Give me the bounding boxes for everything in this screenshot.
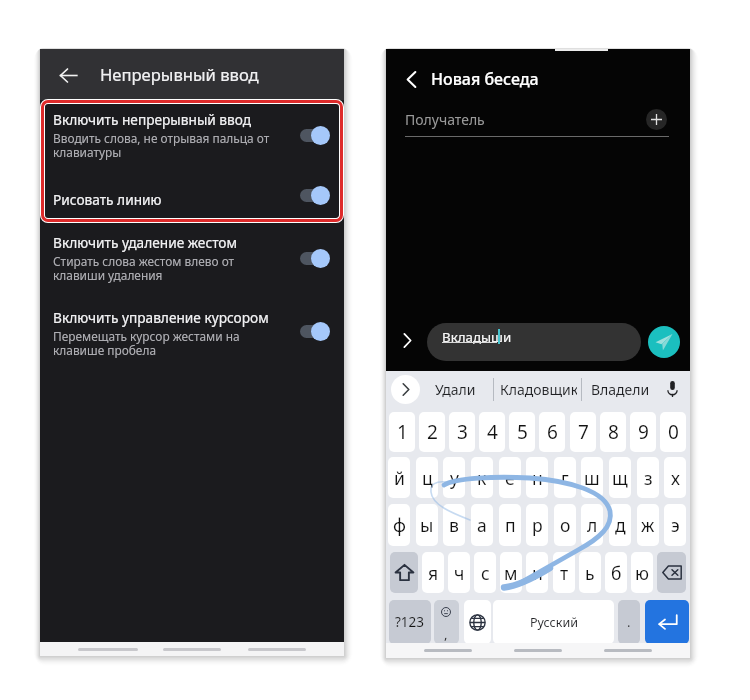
button[interactable]: а <box>471 504 493 546</box>
button[interactable]: Toggle <box>298 321 332 341</box>
staticText: Русский <box>530 614 578 631</box>
staticText: Получатель <box>405 110 485 129</box>
staticText: . <box>627 613 631 631</box>
button[interactable]: Back <box>46 53 90 97</box>
button[interactable]: ы <box>416 504 438 546</box>
staticText: с <box>481 561 490 585</box>
button[interactable]: п <box>499 504 521 546</box>
staticText: е <box>505 466 515 490</box>
button[interactable]: ь <box>579 552 601 593</box>
button[interactable]: 4 <box>479 412 505 452</box>
button[interactable]: More suggestions <box>391 375 420 404</box>
staticText: й <box>394 466 405 490</box>
staticText: Вводить слова, не отрывая пальца от клав… <box>53 130 270 161</box>
button[interactable]: ф <box>388 504 410 546</box>
button[interactable]: е <box>499 457 521 498</box>
button[interactable]: Включить управление курсором <box>40 308 344 368</box>
staticText: ч <box>454 561 465 585</box>
staticText: ы <box>420 513 434 537</box>
button[interactable]: Русский <box>493 600 614 644</box>
button[interactable]: Shift <box>390 552 418 593</box>
button[interactable]: 2 <box>419 412 445 452</box>
staticText: у <box>450 466 459 490</box>
button[interactable]: Рисовать линию <box>40 190 344 224</box>
staticText: Кладовщик <box>500 380 577 399</box>
button[interactable]: Toggle <box>298 125 332 145</box>
button[interactable]: Emoji and comma <box>434 600 459 644</box>
staticText: Непрерывный ввод <box>100 63 259 86</box>
button[interactable]: Кладовщик <box>500 375 577 404</box>
button[interactable]: к <box>471 457 493 498</box>
button[interactable]: 1 <box>389 412 415 452</box>
button[interactable]: и <box>526 552 548 593</box>
button[interactable]: 8 <box>600 412 626 452</box>
button[interactable]: 5 <box>509 412 535 452</box>
staticText: Удали <box>435 380 476 399</box>
button[interactable]: Владели <box>589 375 651 404</box>
button[interactable]: 0 <box>660 412 686 452</box>
button[interactable]: Enter <box>645 600 689 644</box>
staticText: Рисовать линию <box>53 190 162 209</box>
button[interactable]: 7 <box>570 412 596 452</box>
staticText: в <box>449 513 459 537</box>
button[interactable]: Backspace <box>657 552 686 593</box>
staticText: р <box>532 513 543 537</box>
button[interactable]: э <box>664 504 686 546</box>
staticText: л <box>587 513 598 537</box>
button[interactable]: Change language <box>464 600 491 644</box>
button[interactable]: р <box>526 504 548 546</box>
button[interactable]: Toggle <box>298 248 332 268</box>
button[interactable]: ?123 <box>389 600 431 644</box>
button[interactable]: 6 <box>539 412 565 452</box>
staticText: ц <box>422 466 433 490</box>
button[interactable]: я <box>422 552 444 593</box>
button[interactable]: Back <box>396 64 426 94</box>
button[interactable]: ж <box>637 504 659 546</box>
button[interactable]: н <box>526 457 548 498</box>
staticText: 0 <box>668 419 679 445</box>
staticText: ю <box>635 561 649 585</box>
staticText: 8 <box>608 419 619 445</box>
button[interactable]: у <box>443 457 465 498</box>
button[interactable]: Включить удаление жестом <box>40 233 344 293</box>
button[interactable]: ю <box>631 552 653 593</box>
staticText: э <box>671 513 680 537</box>
button[interactable]: о <box>554 504 576 546</box>
button[interactable]: л <box>581 504 603 546</box>
button[interactable]: Вкладыши <box>427 323 641 361</box>
button[interactable]: Включить непрерывный ввод <box>40 110 344 170</box>
staticText: 4 <box>487 419 498 445</box>
staticText: 9 <box>638 419 649 445</box>
button[interactable]: т <box>553 552 575 593</box>
staticText: 1 <box>397 419 408 445</box>
button[interactable]: 3 <box>449 412 475 452</box>
button[interactable]: 9 <box>630 412 656 452</box>
button[interactable]: Voice input <box>662 375 682 403</box>
button[interactable]: з <box>637 457 659 498</box>
button[interactable]: щ <box>609 457 631 498</box>
button[interactable]: с <box>474 552 496 593</box>
button[interactable]: х <box>664 457 686 498</box>
button[interactable]: Add recipient <box>646 109 667 130</box>
button[interactable]: ч <box>448 552 470 593</box>
staticText: х <box>671 466 680 490</box>
staticText: Включить непрерывный ввод <box>53 110 252 129</box>
button[interactable]: ц <box>416 457 438 498</box>
staticText: 7 <box>578 419 589 445</box>
button[interactable]: д <box>609 504 631 546</box>
button[interactable]: . <box>618 600 640 644</box>
button[interactable]: в <box>443 504 465 546</box>
staticText: и <box>532 561 543 585</box>
button[interactable]: Expand <box>394 327 420 353</box>
button[interactable]: й <box>388 457 410 498</box>
staticText: о <box>560 513 571 537</box>
button[interactable]: г <box>554 457 576 498</box>
button[interactable]: Удали <box>434 375 477 404</box>
button[interactable]: б <box>605 552 627 593</box>
staticText: н <box>532 466 543 490</box>
button[interactable]: Send <box>648 326 680 358</box>
button[interactable]: ш <box>581 457 603 498</box>
button[interactable]: м <box>500 552 522 593</box>
staticText: м <box>504 561 518 585</box>
button[interactable]: Toggle <box>298 185 332 205</box>
